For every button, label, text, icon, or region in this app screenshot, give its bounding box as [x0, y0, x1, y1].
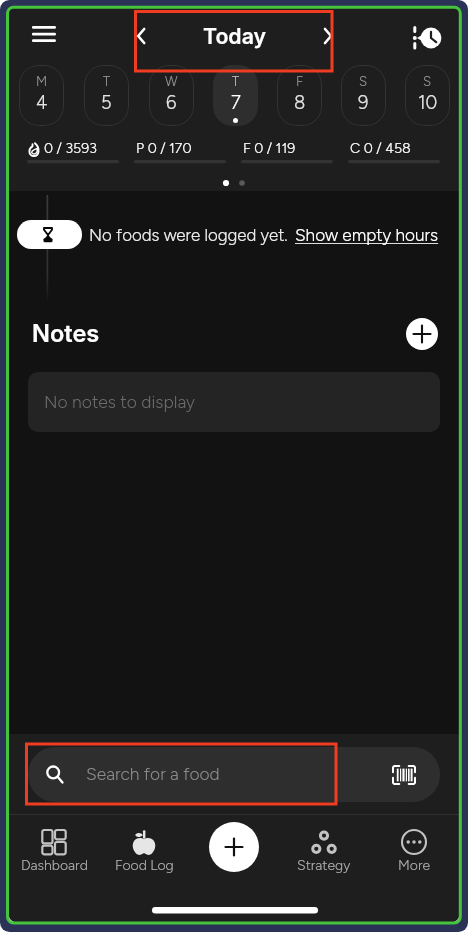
button[interactable]: Menu: [30, 18, 78, 50]
staticText: 6: [166, 92, 177, 114]
button[interactable]: S: [341, 65, 386, 126]
button[interactable]: Today: [136, 12, 333, 72]
staticText: No notes to display: [44, 391, 195, 412]
staticText: T: [232, 73, 240, 89]
button[interactable]: Dashboard: [9, 814, 99, 884]
staticText: Search for a food: [86, 763, 220, 784]
button[interactable]: History: [400, 13, 448, 61]
staticText: More: [398, 857, 430, 874]
button[interactable]: T: [84, 65, 129, 126]
staticText: Dashboard: [21, 857, 88, 874]
staticText: M: [36, 73, 48, 89]
button[interactable]: Pending meals: [17, 220, 82, 249]
staticText: 4: [36, 92, 48, 114]
staticText: W: [165, 73, 178, 89]
staticText: No foods were logged yet.: [89, 225, 288, 245]
button[interactable]: S: [405, 65, 450, 126]
staticText: Today: [203, 23, 267, 49]
button[interactable]: Search for a food: [28, 747, 440, 802]
staticText: P 0 / 170: [136, 140, 192, 157]
button[interactable]: Show empty hours: [295, 225, 439, 246]
staticText: 5: [101, 92, 112, 114]
button[interactable]: No notes to display: [28, 372, 440, 432]
staticText: F: [296, 73, 304, 89]
button[interactable]: F: [277, 65, 322, 126]
staticText: F 0 / 119: [243, 140, 296, 157]
staticText: Notes: [32, 319, 100, 348]
button[interactable]: Food Log: [99, 814, 189, 884]
staticText: 8: [294, 92, 306, 114]
staticText: S: [423, 73, 432, 89]
button[interactable]: M: [19, 65, 64, 126]
staticText: 7: [231, 92, 241, 114]
button[interactable]: Add: [209, 822, 259, 872]
staticText: C 0 / 458: [350, 140, 411, 157]
button[interactable]: Add note: [406, 318, 438, 350]
staticText: 9: [358, 92, 369, 114]
staticText: Strategy: [297, 857, 351, 874]
button[interactable]: Scan barcode: [384, 760, 424, 790]
staticText: 10: [418, 92, 438, 114]
staticText: T: [103, 73, 111, 89]
button[interactable]: Strategy: [279, 814, 369, 884]
staticText: Food Log: [115, 857, 174, 874]
button[interactable]: More: [369, 814, 459, 884]
staticText: Show empty hours: [295, 225, 439, 246]
button[interactable]: T: [213, 65, 258, 126]
button[interactable]: W: [149, 65, 194, 126]
staticText: S: [359, 73, 368, 89]
staticText: 0 / 3593: [44, 140, 97, 157]
